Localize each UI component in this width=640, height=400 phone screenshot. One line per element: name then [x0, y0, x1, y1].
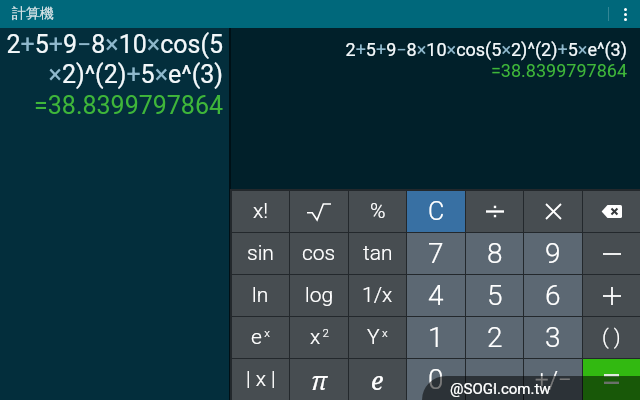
staticText: . [491, 363, 498, 396]
staticText: sin [247, 241, 274, 266]
button[interactable]: 3 [524, 317, 582, 358]
button[interactable]: . [466, 359, 523, 400]
button[interactable]: 8 [466, 233, 523, 274]
staticText: 1 [428, 321, 444, 354]
button[interactable]: e [349, 359, 406, 400]
button[interactable] [583, 359, 640, 400]
button[interactable]: Y x [349, 317, 406, 358]
button[interactable]: More options [608, 0, 640, 28]
staticText: e [371, 363, 384, 397]
button[interactable]: 4 [407, 275, 465, 316]
button[interactable]: 6 [524, 275, 582, 316]
button[interactable]: sin [232, 233, 289, 274]
button[interactable]: | x | [232, 359, 289, 400]
button[interactable] [583, 275, 640, 316]
staticText: 5 [487, 279, 503, 312]
button[interactable] [290, 191, 348, 232]
staticText: @SOGI.com.tw [450, 380, 551, 398]
staticText: tan [363, 241, 393, 266]
staticText: 計算機 [12, 5, 54, 23]
staticText: C [428, 197, 445, 226]
staticText: 4 [428, 279, 444, 312]
staticText: 2 [487, 321, 503, 354]
button[interactable]: π [290, 359, 348, 400]
staticText: | x | [246, 367, 276, 392]
button[interactable] [583, 233, 640, 274]
button[interactable]: % [349, 191, 406, 232]
staticText: % [370, 199, 386, 224]
staticText: 2+5+9−8×10×cos(5 ×2)^(2)+5×e^(3) [4, 30, 223, 89]
staticText: Y x [367, 325, 388, 350]
button[interactable]: ln [232, 275, 289, 316]
staticText: 6 [545, 279, 561, 312]
button[interactable] [524, 191, 582, 232]
button[interactable]: tan [349, 233, 406, 274]
button[interactable]: 9 [524, 233, 582, 274]
staticText: 8 [487, 237, 503, 270]
button[interactable]: ( ) [583, 317, 640, 358]
staticText: cos [302, 241, 336, 266]
button[interactable]: x 2 [290, 317, 348, 358]
staticText: =38.8399797864 [4, 91, 223, 120]
button[interactable]: 0 [407, 359, 465, 400]
button[interactable]: C [407, 191, 465, 232]
staticText: +/− [535, 366, 572, 394]
staticText: e x [251, 325, 270, 350]
button[interactable]: cos [290, 233, 348, 274]
button[interactable]: +/− [524, 359, 582, 400]
staticText: log [305, 283, 334, 308]
staticText: 3 [545, 321, 561, 354]
button[interactable]: x! [232, 191, 289, 232]
staticText: ln [252, 283, 269, 308]
staticText: ( ) [602, 325, 621, 350]
button[interactable]: 1 [407, 317, 465, 358]
button[interactable] [583, 191, 640, 232]
staticText: 7 [428, 237, 444, 270]
button[interactable]: log [290, 275, 348, 316]
staticText: 2+5+9−8×10×cos(5×2)^(2)+5×e^(3) [243, 39, 627, 60]
button[interactable]: 5 [466, 275, 523, 316]
staticText: x! [253, 199, 268, 224]
button[interactable]: e x [232, 317, 289, 358]
staticText: 9 [545, 237, 561, 270]
staticText: π [311, 363, 328, 397]
staticText: 0 [428, 363, 444, 396]
staticText: 1/x [362, 283, 393, 308]
button[interactable]: 7 [407, 233, 465, 274]
button[interactable]: 1/x [349, 275, 406, 316]
button[interactable] [466, 191, 523, 232]
staticText: x 2 [310, 325, 329, 350]
button[interactable]: 2 [466, 317, 523, 358]
staticText: =38.8399797864 [243, 60, 627, 81]
